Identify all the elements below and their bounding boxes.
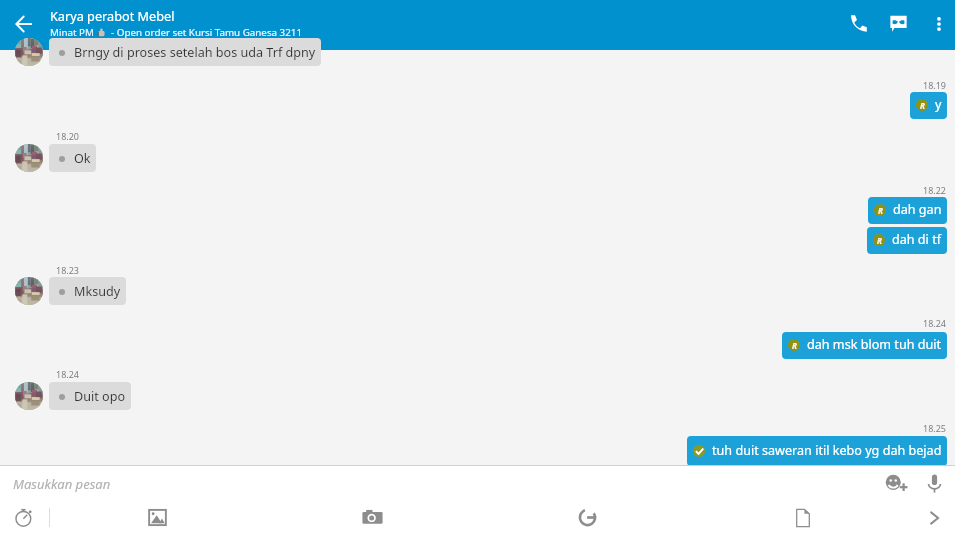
staticText: Mksudy [74, 283, 121, 300]
button[interactable]: Call [839, 4, 878, 43]
staticText: 18.20 [56, 130, 80, 142]
button[interactable]: R [868, 197, 947, 224]
staticText: 18.24 [923, 317, 947, 329]
button[interactable]: Google search [569, 500, 605, 535]
staticText: Ok [74, 150, 91, 167]
staticText: Minat PM [50, 26, 97, 39]
button[interactable]: Camera [354, 500, 390, 535]
staticText: Masukkan pesan [13, 475, 111, 493]
button[interactable]: Voice message [918, 466, 951, 500]
staticText: dah di tf [892, 231, 942, 248]
button[interactable]: More [917, 500, 953, 535]
staticText: 18.23 [56, 264, 80, 276]
button[interactable]: More options [920, 4, 955, 43]
button[interactable]: Duit opo [49, 382, 131, 410]
staticText: R [920, 100, 925, 111]
button[interactable]: R [910, 92, 947, 119]
button[interactable]: File [785, 500, 821, 535]
staticText: tuh duit saweran itil kebo yg dah bejad [712, 442, 942, 459]
button[interactable]: Mksudy [49, 277, 126, 305]
button[interactable]: R [782, 332, 947, 359]
staticText: Duit opo [74, 388, 126, 405]
staticText: 18.25 [923, 422, 947, 434]
button[interactable]: tuh duit saweran itil kebo yg dah bejad [687, 436, 947, 466]
button[interactable]: Brngy di proses setelah bos uda Trf dpny [49, 38, 321, 66]
button[interactable]: Back [4, 4, 43, 43]
staticText: - Open order set Kursi Tamu Ganesa 3211 [106, 26, 303, 39]
staticText: R [792, 340, 797, 351]
button[interactable]: Gallery [139, 500, 175, 535]
staticText: Karya perabot Mebel [50, 7, 175, 24]
button[interactable]: Ok [49, 144, 96, 172]
staticText: 18.22 [923, 184, 947, 196]
button[interactable]: Sticker [879, 4, 918, 43]
button[interactable]: R [867, 227, 947, 254]
staticText: R [877, 235, 882, 246]
staticText: R [878, 205, 883, 216]
staticText: Brngy di proses setelah bos uda Trf dpny [74, 44, 316, 61]
staticText: 18.19 [923, 79, 947, 91]
staticText: dah gan [893, 201, 942, 218]
button[interactable]: Timed message [6, 500, 42, 535]
staticText: y [935, 96, 942, 113]
button[interactable]: Emoji [881, 466, 913, 500]
staticText: 18.24 [56, 368, 80, 380]
staticText: dah msk blom tuh duit [807, 336, 942, 353]
